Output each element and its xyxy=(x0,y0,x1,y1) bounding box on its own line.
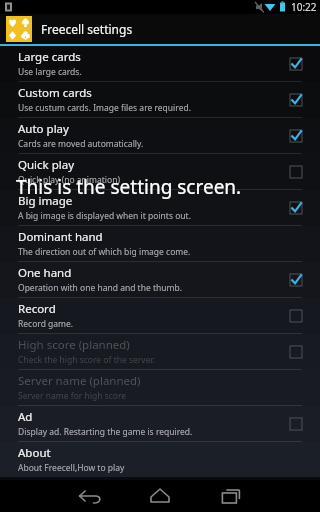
button[interactable]: High score (planned) xyxy=(0,334,320,369)
button[interactable]: Big image toggle xyxy=(286,198,306,218)
staticText: Record game. xyxy=(18,318,74,330)
button[interactable]: Quick play toggle xyxy=(286,162,306,182)
button[interactable]: Auto play toggle xyxy=(286,126,306,146)
button[interactable]: Record xyxy=(0,298,320,333)
staticText: Use custum cards. Image files are requir… xyxy=(18,102,191,114)
staticText: A big image is displayed when it points … xyxy=(18,210,191,222)
button[interactable]: Large cards xyxy=(0,46,320,81)
button[interactable]: Quick play xyxy=(0,154,320,189)
button[interactable]: Record toggle xyxy=(286,306,306,326)
staticText: Record xyxy=(18,301,56,317)
button[interactable]: About xyxy=(0,442,320,477)
staticText: Use large cards. xyxy=(18,66,82,78)
staticText: About xyxy=(18,445,51,461)
staticText: Quick play xyxy=(18,157,75,173)
staticText: Display ad. Restarting the game is requi… xyxy=(18,426,193,438)
button[interactable]: Server name (planned) xyxy=(0,370,320,405)
button[interactable]: One hand xyxy=(0,262,320,297)
staticText: Ad xyxy=(18,409,33,425)
staticText: 10:22 xyxy=(291,0,317,14)
staticText: Operation with one hand and the thumb. xyxy=(18,282,182,294)
button[interactable]: Large cards toggle xyxy=(286,54,306,74)
button[interactable]: Custom cards xyxy=(0,82,320,117)
button[interactable]: Big image xyxy=(0,190,320,225)
staticText: This is the setting screen. xyxy=(16,174,242,200)
staticText: About Freecell,How to play xyxy=(18,462,125,474)
staticText: Big image xyxy=(18,193,73,209)
button[interactable]: High score (planned) toggle xyxy=(286,342,306,362)
staticText: Dominant hand xyxy=(18,229,103,245)
button[interactable]: Home xyxy=(142,480,178,512)
staticText: Quick play (no animation) xyxy=(18,174,120,186)
button[interactable]: Custom cards toggle xyxy=(286,90,306,110)
staticText: Check the high score of the server. xyxy=(18,354,155,366)
staticText: Custom cards xyxy=(18,85,92,101)
button[interactable]: One hand toggle xyxy=(286,270,306,290)
button[interactable]: Back xyxy=(70,480,106,512)
button[interactable]: Recent apps xyxy=(214,480,250,512)
staticText: Server name (planned) xyxy=(18,373,141,389)
button[interactable]: Auto play xyxy=(0,118,320,153)
staticText: Large cards xyxy=(18,49,81,65)
staticText: One hand xyxy=(18,265,72,281)
button[interactable]: Dominant hand xyxy=(0,226,320,261)
button[interactable]: Ad xyxy=(0,406,320,441)
staticText: Freecell settings xyxy=(41,21,133,37)
button[interactable]: Ad toggle xyxy=(286,414,306,434)
staticText: The direction out of which big image com… xyxy=(18,246,191,258)
staticText: Auto play xyxy=(18,121,69,137)
staticText: Cards are moved automatically. xyxy=(18,138,144,150)
staticText: Server name for high score xyxy=(18,390,127,402)
staticText: High score (planned) xyxy=(18,337,130,353)
